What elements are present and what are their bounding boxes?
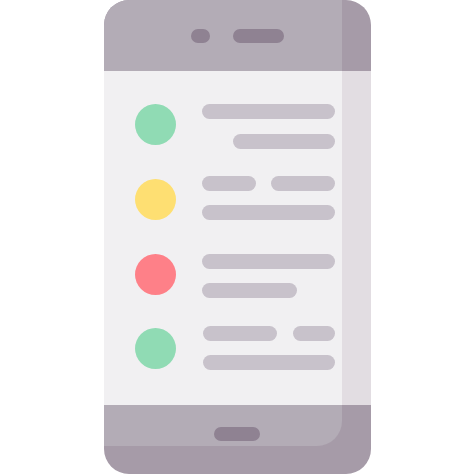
button[interactable]: Home button [214,427,260,441]
other: Front camera [191,29,210,43]
button[interactable]: Contact avatar [135,179,176,220]
button[interactable]: Contact avatar [135,104,176,145]
button[interactable]: Contact avatar [135,328,176,369]
other: Speaker [233,29,284,43]
button[interactable]: Contact avatar [135,254,176,295]
